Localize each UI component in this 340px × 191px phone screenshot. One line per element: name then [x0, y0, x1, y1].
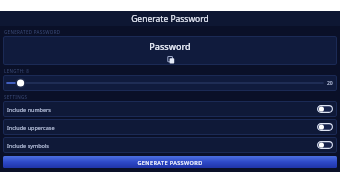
button[interactable]: Toggle option	[317, 141, 333, 149]
staticText: SETTINGS	[4, 94, 28, 100]
button[interactable]: Include uppercase	[3, 119, 337, 135]
button[interactable]: GENERATE PASSWORD	[3, 156, 337, 168]
staticText: Include uppercase	[7, 124, 55, 131]
button[interactable]: Include symbols	[3, 137, 337, 153]
staticText: LENGTH: 8	[4, 68, 30, 74]
staticText: Generate Password	[131, 13, 209, 25]
button[interactable]: Toggle option	[317, 123, 333, 131]
button[interactable]: Copy password	[165, 54, 176, 65]
staticText: Include numbers	[7, 106, 51, 113]
staticText: GENERATE PASSWORD	[137, 159, 203, 166]
staticText: Include symbols	[7, 142, 49, 149]
staticText: 20	[327, 80, 333, 87]
staticText: GENERATED PASSWORD	[4, 29, 61, 35]
button[interactable]: Include numbers	[3, 101, 337, 117]
button[interactable]: 20	[3, 75, 337, 91]
button[interactable]: Password	[3, 36, 337, 65]
button[interactable]: Toggle option	[317, 105, 333, 113]
staticText: Password	[149, 40, 191, 52]
